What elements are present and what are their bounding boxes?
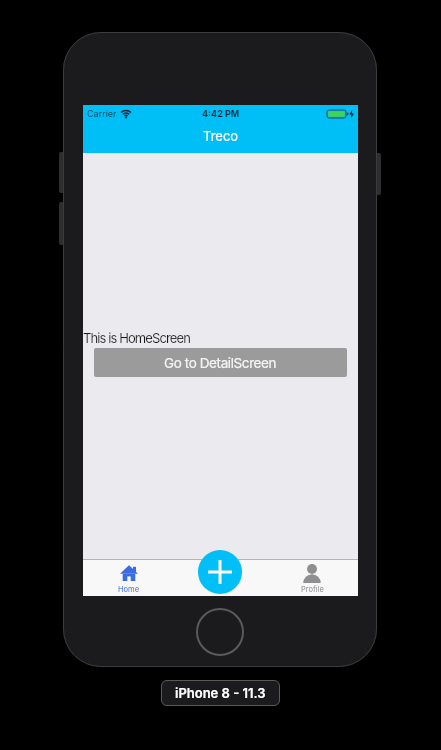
staticText: Home	[118, 585, 140, 594]
staticText: Treco	[203, 128, 239, 144]
staticText: This is HomeScreen	[83, 330, 190, 346]
staticText: Carrier	[87, 108, 117, 119]
staticText: iPhone 8 - 11.3	[175, 685, 266, 701]
button[interactable]: Profile	[266, 560, 358, 596]
staticText: Go to DetailScreen	[164, 355, 277, 371]
button[interactable]: Go to DetailScreen	[94, 348, 347, 377]
button[interactable]: Home	[83, 560, 174, 596]
button[interactable]	[198, 550, 242, 594]
staticText: Profile	[301, 585, 324, 594]
staticText: 4:42 PM	[202, 108, 240, 119]
